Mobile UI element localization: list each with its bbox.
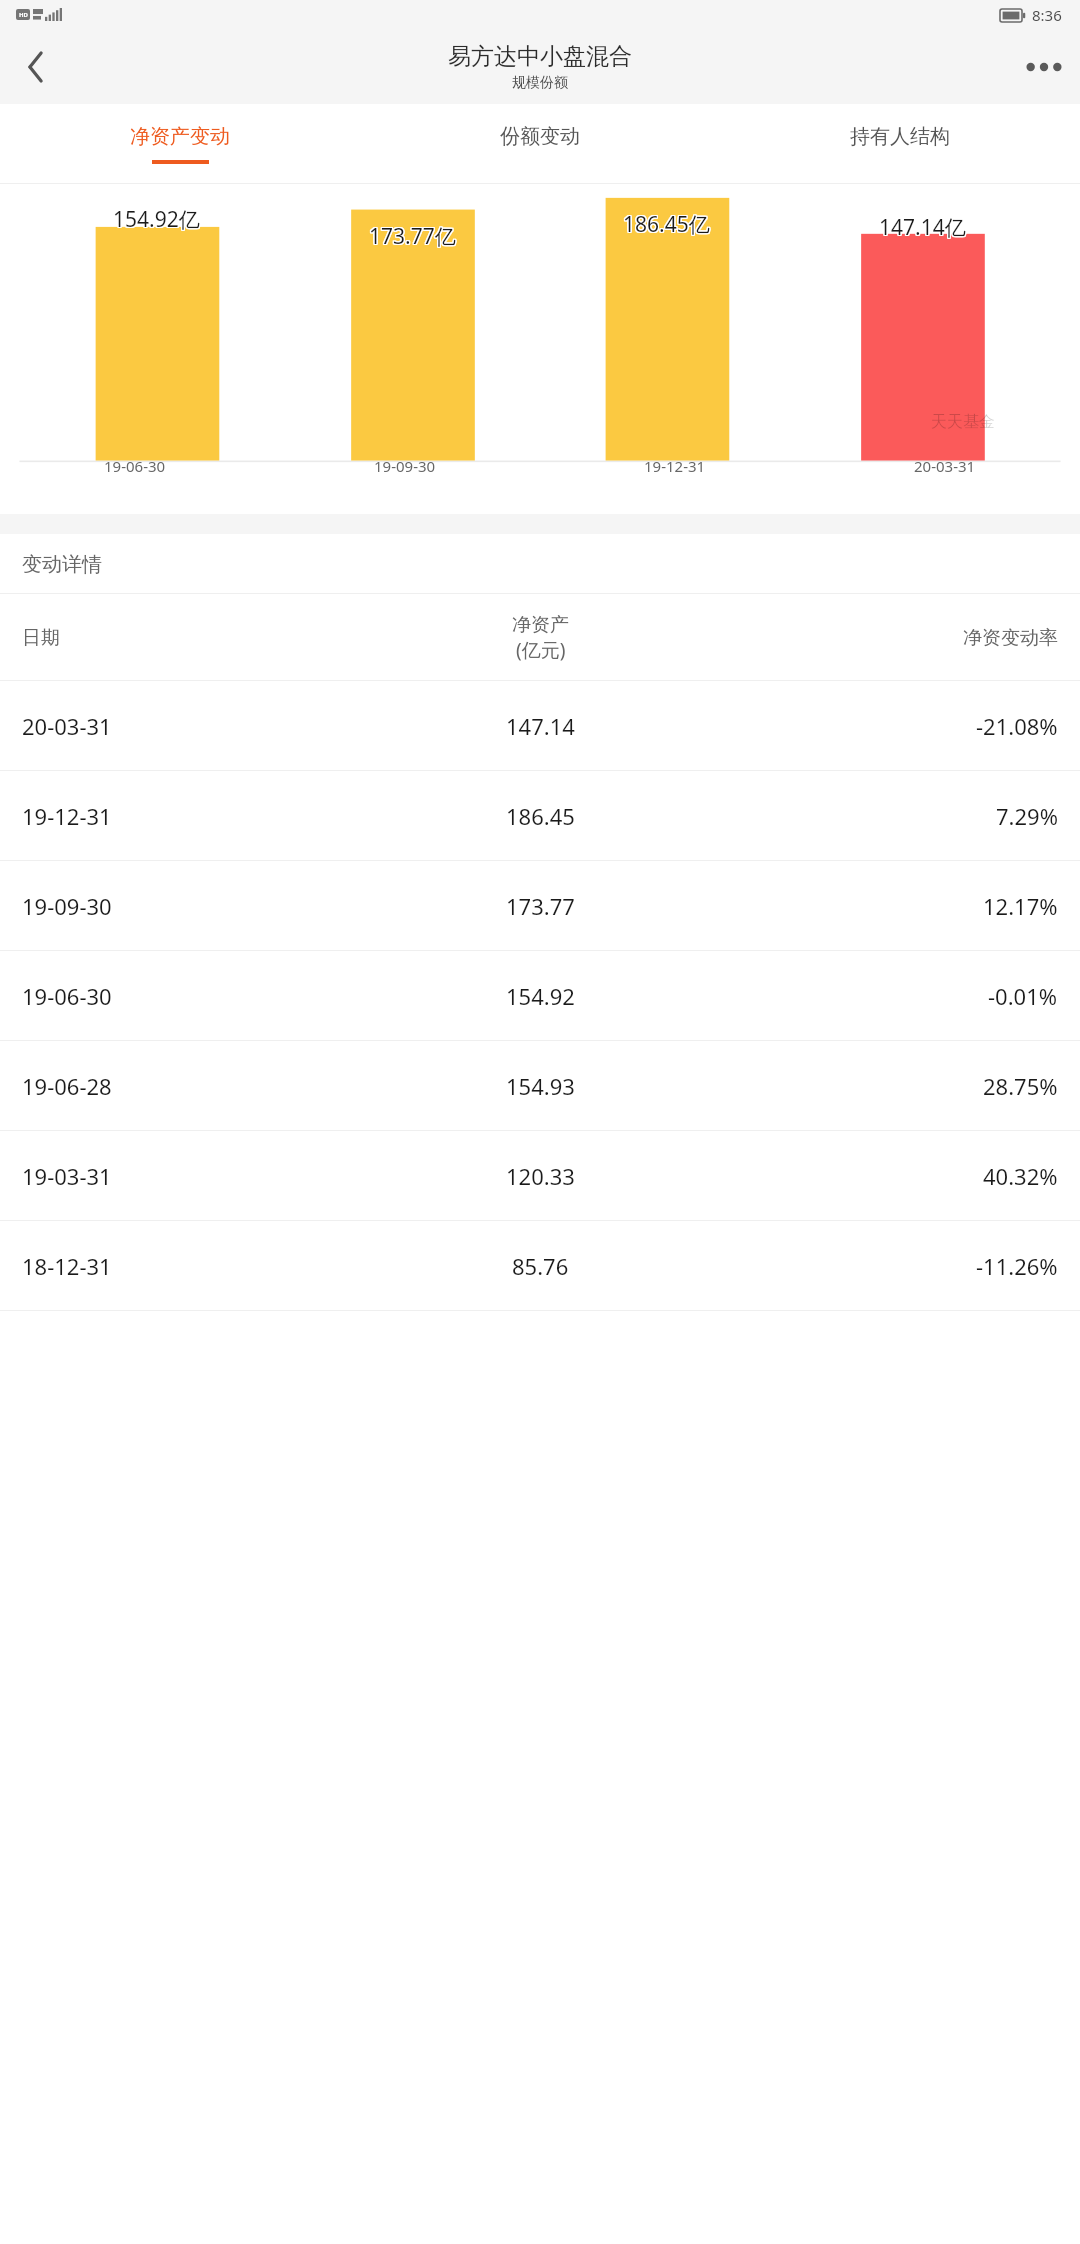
staticText: 147.14亿	[880, 214, 967, 243]
staticText: 8:36	[1032, 5, 1062, 25]
staticText: 154.92亿	[113, 205, 200, 234]
staticText: HD	[19, 11, 28, 19]
staticText: 19-06-28	[22, 1071, 112, 1101]
staticText: 186.45亿	[623, 210, 710, 239]
staticText: 186.45亿	[623, 211, 710, 240]
staticText: 19-09-30	[374, 456, 436, 476]
staticText: 154.92亿	[112, 206, 199, 235]
staticText: 147.14亿	[879, 213, 966, 242]
staticText: 173.77亿	[368, 221, 455, 250]
staticText: -21.08%	[976, 711, 1058, 741]
staticText: 持有人结构	[850, 124, 950, 149]
staticText: 173.77亿	[368, 222, 455, 251]
button[interactable]: 19-09-30	[0, 861, 1080, 951]
staticText: 154.92亿	[112, 205, 199, 234]
staticText: 20-03-31	[22, 711, 112, 741]
staticText: 18-12-31	[22, 1251, 112, 1281]
staticText: 147.14亿	[878, 214, 965, 243]
staticText: 净资产变动	[130, 124, 230, 149]
staticText: 186.45亿	[623, 209, 710, 238]
staticText: 28.75%	[983, 1071, 1058, 1101]
staticText: 173.77亿	[368, 223, 455, 252]
staticText: 154.92	[506, 981, 575, 1011]
staticText: 19-12-31	[22, 801, 112, 831]
staticText: 147.14	[506, 711, 575, 741]
button[interactable]: 19-12-31	[0, 771, 1080, 861]
button[interactable]: 20-03-31	[0, 681, 1080, 771]
staticText: 天天基金	[931, 412, 995, 432]
staticText: 7.29%	[996, 801, 1058, 831]
staticText: 186.45亿	[624, 210, 711, 239]
staticText: 19-06-30	[104, 456, 166, 476]
staticText: (亿元)	[516, 637, 566, 663]
staticText: 变动详情	[22, 552, 102, 577]
button[interactable]: More options	[1008, 29, 1080, 104]
staticText: 净资产	[512, 613, 569, 637]
staticText: -11.26%	[976, 1251, 1058, 1281]
staticText: 19-06-30	[22, 981, 112, 1011]
staticText: 147.14亿	[879, 214, 966, 243]
staticText: 186.45亿	[622, 210, 709, 239]
staticText: 154.92亿	[112, 204, 199, 233]
staticText: 147.14亿	[880, 212, 967, 241]
staticText: 186.45亿	[624, 211, 711, 240]
staticText: -0.01%	[988, 981, 1058, 1011]
staticText: 净资变动率	[963, 626, 1058, 650]
staticText: 186.45亿	[624, 209, 711, 238]
staticText: 173.77	[506, 891, 575, 921]
staticText: 173.77亿	[369, 222, 456, 251]
staticText: 19-03-31	[22, 1161, 112, 1191]
staticText: 40.32%	[983, 1161, 1058, 1191]
staticText: 规模份额	[512, 74, 568, 92]
staticText: 147.14亿	[879, 212, 966, 241]
staticText: 154.92亿	[114, 206, 201, 235]
staticText: 147.14亿	[878, 212, 965, 241]
staticText: 份额变动	[500, 124, 580, 149]
button[interactable]: 18-12-31	[0, 1221, 1080, 1311]
button[interactable]: 19-06-30	[0, 951, 1080, 1041]
staticText: 147.14亿	[880, 213, 967, 242]
button[interactable]: 19-06-28	[0, 1041, 1080, 1131]
staticText: 20-03-31	[914, 456, 976, 476]
staticText: 85.76	[512, 1251, 569, 1281]
staticText: 173.77亿	[369, 223, 456, 252]
staticText: 173.77亿	[370, 222, 457, 251]
staticText: 186.45亿	[622, 211, 709, 240]
button[interactable]: 净资产变动	[0, 104, 360, 184]
staticText: 120.33	[506, 1161, 575, 1191]
staticText: 154.92亿	[113, 206, 200, 235]
staticText: 日期	[22, 626, 60, 650]
staticText: 154.93	[506, 1071, 575, 1101]
staticText: 154.92亿	[113, 204, 200, 233]
staticText: 154.92亿	[114, 205, 201, 234]
staticText: 173.77亿	[370, 223, 457, 252]
button[interactable]: Back	[0, 29, 72, 104]
button[interactable]: 持有人结构	[720, 104, 1080, 184]
staticText: 154.92亿	[114, 204, 201, 233]
staticText: 易方达中小盘混合	[448, 42, 632, 71]
staticText: 19-09-30	[22, 891, 112, 921]
staticText: 173.77亿	[370, 221, 457, 250]
staticText: 147.14亿	[878, 213, 965, 242]
button[interactable]: 份额变动	[360, 104, 720, 184]
staticText: 186.45亿	[622, 209, 709, 238]
staticText: 173.77亿	[369, 221, 456, 250]
button[interactable]: 19-03-31	[0, 1131, 1080, 1221]
staticText: 19-12-31	[644, 456, 706, 476]
staticText: 12.17%	[983, 891, 1058, 921]
staticText: 186.45	[506, 801, 575, 831]
